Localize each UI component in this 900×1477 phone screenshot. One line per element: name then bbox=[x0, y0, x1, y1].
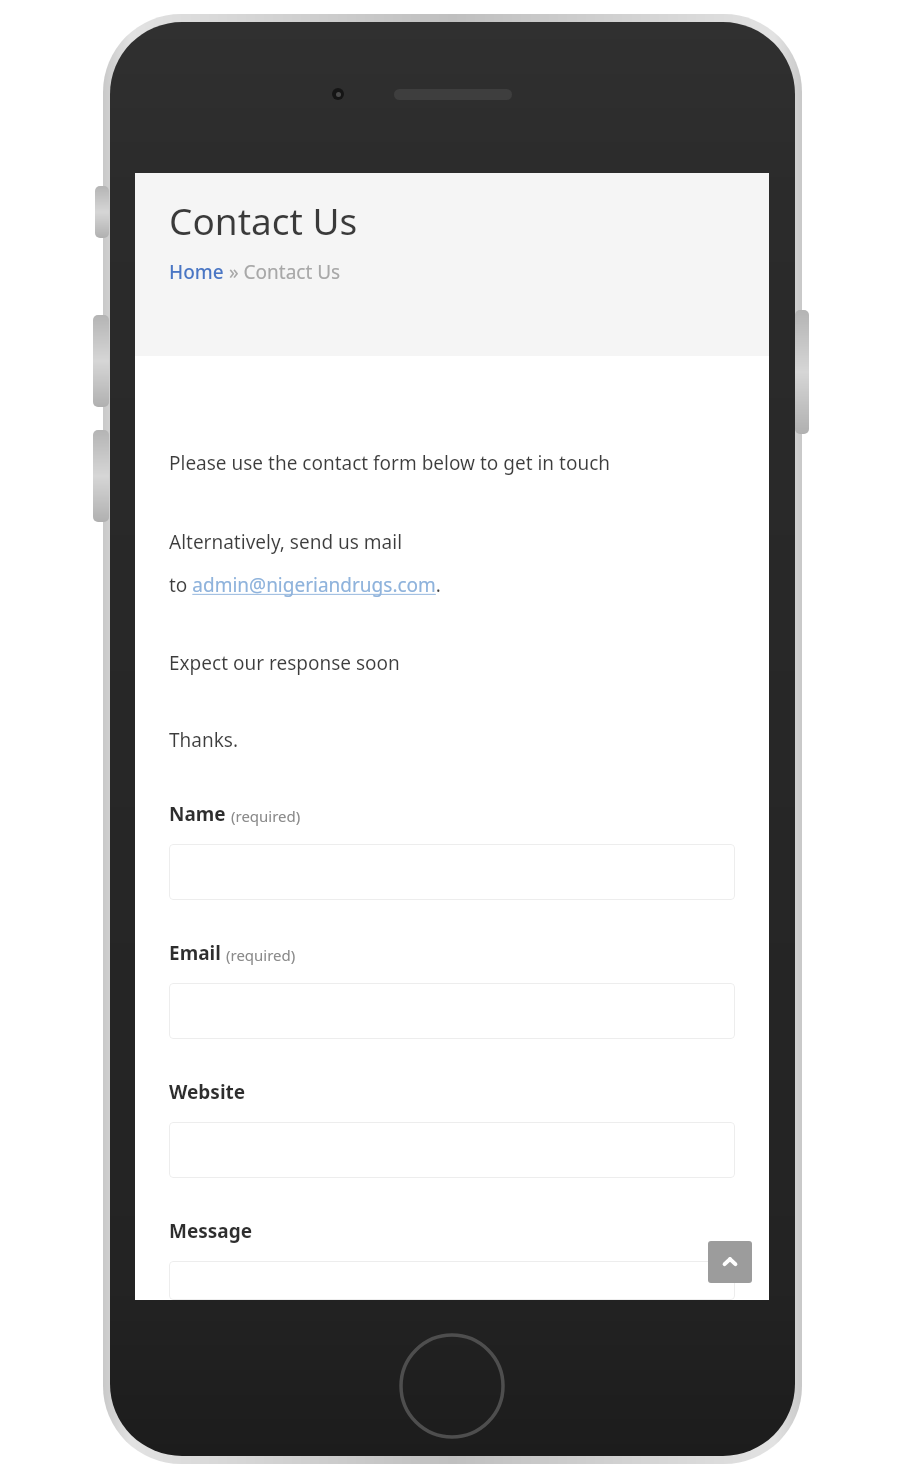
staticText: Please use the contact form below to get… bbox=[169, 450, 610, 476]
staticText: » Contact Us bbox=[224, 259, 341, 285]
button[interactable] bbox=[169, 844, 735, 900]
button[interactable] bbox=[169, 1261, 735, 1300]
staticText: Message bbox=[169, 1218, 253, 1244]
staticText: to admin@nigeriandrugs.com. bbox=[169, 572, 441, 598]
staticText: Name bbox=[169, 801, 226, 827]
button[interactable] bbox=[169, 983, 735, 1039]
button[interactable]: to admin@nigeriandrugs.com. bbox=[169, 572, 441, 598]
button[interactable] bbox=[169, 1122, 735, 1178]
staticText: Contact Us bbox=[169, 195, 358, 245]
staticText: Alternatively, send us mail bbox=[169, 529, 403, 555]
staticText: Email bbox=[169, 940, 221, 966]
staticText: (required) bbox=[226, 945, 296, 965]
button[interactable]: Scroll to top bbox=[708, 1241, 752, 1283]
staticText: Thanks. bbox=[169, 727, 239, 753]
staticText: Home bbox=[169, 259, 224, 285]
staticText: Website bbox=[169, 1079, 246, 1105]
button[interactable]: Home bbox=[169, 259, 224, 285]
staticText: (required) bbox=[231, 806, 301, 826]
staticText: Expect our response soon bbox=[169, 650, 400, 676]
